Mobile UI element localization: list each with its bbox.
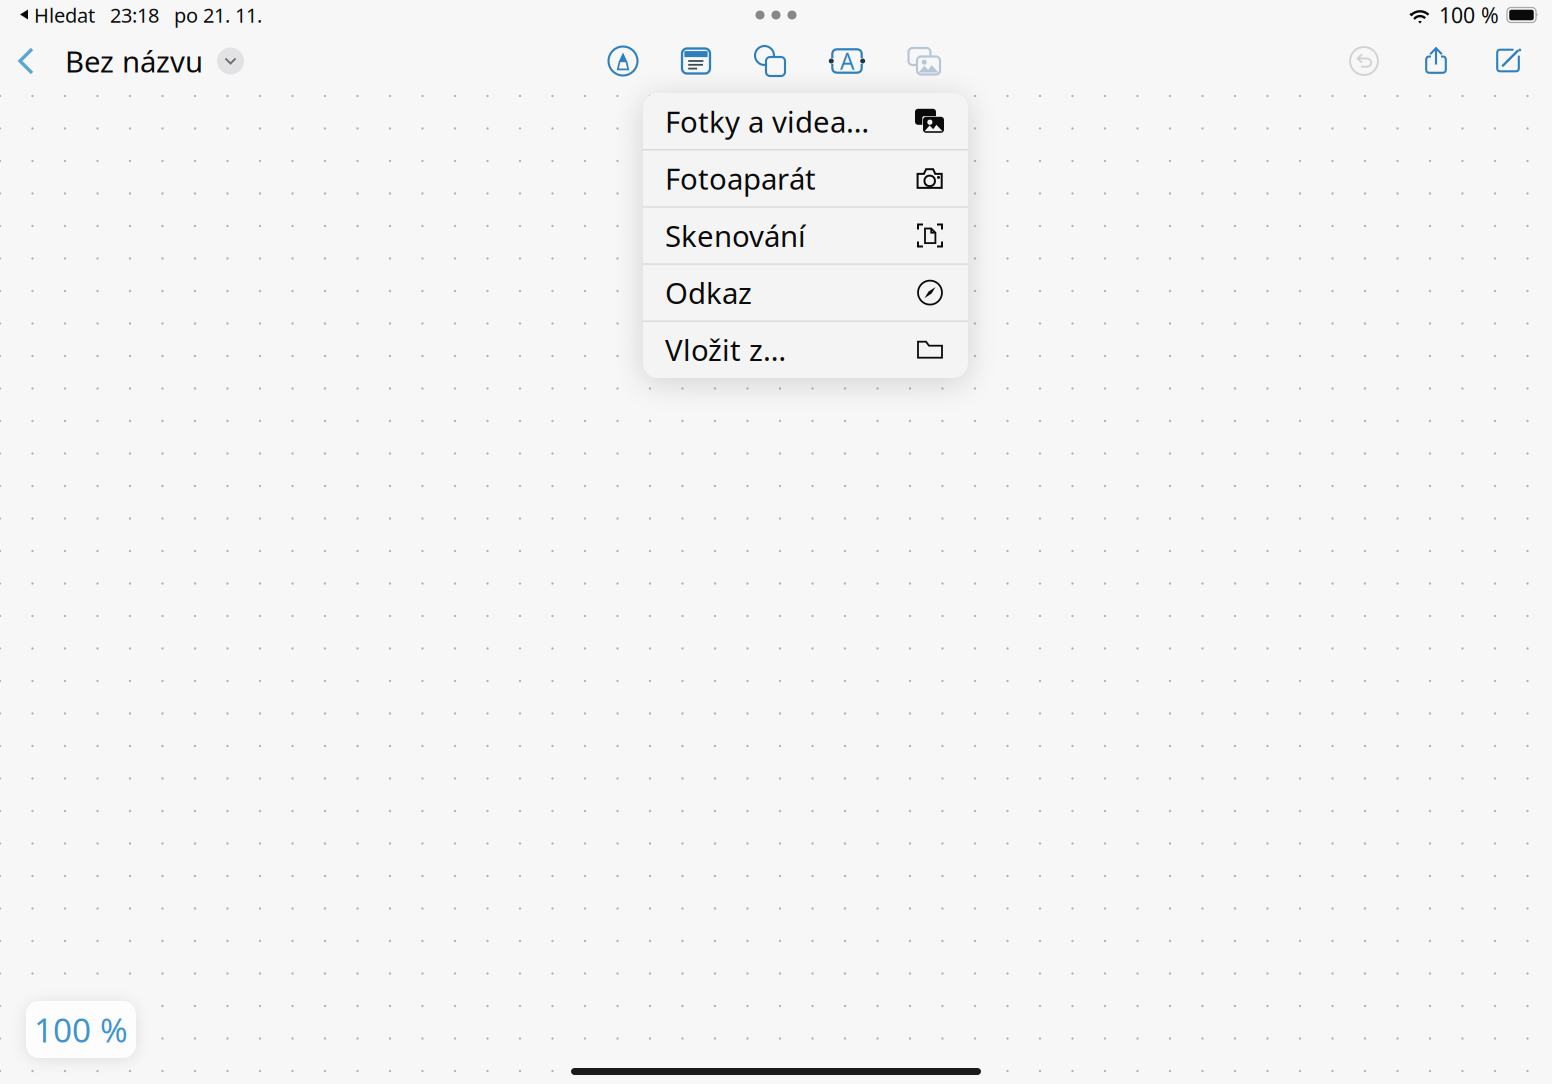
button[interactable]: Bez názvu [44,37,254,85]
button[interactable]: Draw [607,45,639,77]
staticText: A [840,46,854,76]
button[interactable]: Share [1400,37,1472,85]
button[interactable]: Text box [828,45,866,77]
staticText: Hledat [29,2,95,28]
button[interactable]: Skenování [643,207,968,264]
button[interactable]: Odkaz [643,264,968,322]
staticText: 100 % [1439,1,1499,29]
button[interactable]: New board [1472,37,1544,85]
button[interactable]: Back [8,37,44,85]
button[interactable]: Sticky note [680,45,712,77]
staticText: 23:18 [110,2,159,28]
button[interactable]: Insert media [907,45,941,77]
staticText: Vložit z… [665,330,786,369]
staticText: Fotoaparát [665,159,816,198]
button[interactable]: Shapes [753,45,787,77]
staticText: 100 % [34,1007,128,1052]
staticText: Odkaz [665,273,752,312]
staticText: po 21. 11. [174,2,262,28]
button[interactable]: Vložit z… [643,322,968,378]
button[interactable]: Fotoaparát [643,150,968,207]
button[interactable]: Fotky a videa… [643,93,968,150]
button[interactable]: Undo [1328,37,1400,85]
button[interactable]: 100 % [26,1001,136,1058]
staticText: Fotky a videa… [665,102,869,141]
staticText: Skenování [665,216,806,255]
staticText: Bez názvu [65,41,203,80]
